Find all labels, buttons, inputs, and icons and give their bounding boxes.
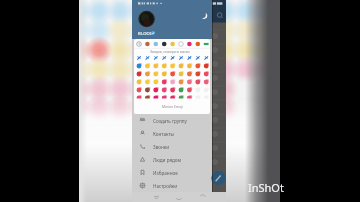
staticText: InShOt	[248, 180, 284, 195]
button[interactable]: Звонки	[132, 140, 212, 153]
button[interactable]: Настройки	[132, 179, 212, 192]
staticText: Контакты	[153, 131, 175, 137]
staticText: Люди рядом	[153, 157, 182, 163]
staticText: Настройки	[153, 183, 178, 189]
staticText: Эмодзи, стикеры и маски	[150, 50, 190, 54]
button[interactable]: Контакты	[132, 127, 212, 140]
staticText: Звонки	[153, 144, 170, 150]
staticText: Создать группу	[153, 118, 187, 124]
staticText: Minion Emoji	[162, 104, 183, 109]
button[interactable]: Избранное	[132, 166, 212, 179]
button[interactable]: Люди рядом	[132, 153, 212, 166]
staticText: BLOOD	[138, 31, 154, 37]
staticText: Избранное	[153, 170, 178, 176]
button[interactable]: Создать группу	[132, 114, 212, 127]
